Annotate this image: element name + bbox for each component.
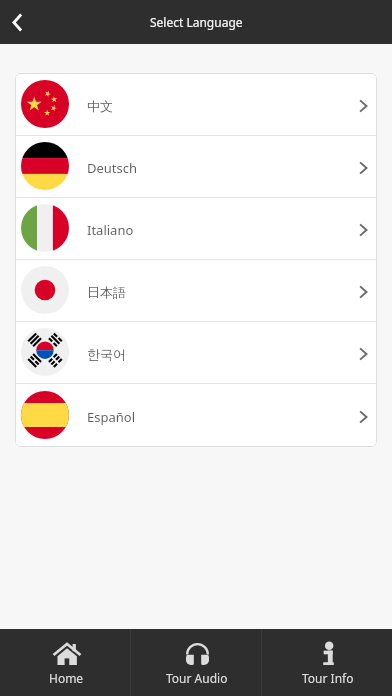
button[interactable]: 中文: [15, 73, 377, 135]
staticText: 中文: [87, 98, 113, 114]
button[interactable]: Back: [0, 0, 40, 44]
staticText: Deutsch: [87, 159, 138, 177]
staticText: Italiano: [87, 221, 134, 239]
staticText: 한국어: [87, 346, 126, 362]
staticText: Tour Audio: [166, 670, 228, 686]
button[interactable]: Home: [0, 629, 130, 696]
button[interactable]: Tour Audio: [131, 629, 261, 696]
button[interactable]: Tour Info: [262, 629, 392, 696]
button[interactable]: 日本語: [15, 259, 377, 321]
button[interactable]: Deutsch: [15, 135, 377, 197]
button[interactable]: Español: [15, 383, 377, 447]
staticText: Español: [87, 408, 135, 426]
staticText: 日本語: [87, 284, 126, 300]
button[interactable]: Italiano: [15, 197, 377, 259]
staticText: Home: [49, 670, 84, 686]
staticText: Tour Info: [302, 670, 354, 686]
staticText: Select Language: [150, 14, 243, 30]
button[interactable]: 한국어: [15, 321, 377, 383]
